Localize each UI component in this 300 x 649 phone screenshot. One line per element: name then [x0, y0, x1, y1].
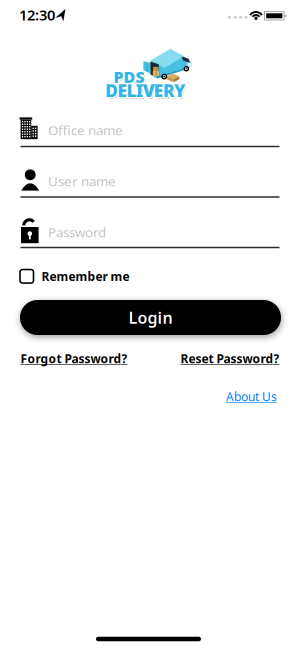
staticText: PDS: [113, 65, 144, 86]
button[interactable]: About Us: [226, 388, 277, 404]
staticText: About Us: [226, 388, 277, 404]
staticText: DELIVERY: [106, 80, 187, 103]
staticText: Forgot Password?: [20, 350, 127, 366]
staticText: PDS: [113, 67, 144, 88]
staticText: PDS: [114, 65, 145, 86]
button[interactable]: Forgot Password?: [20, 350, 127, 366]
staticText: DELIVERY: [107, 79, 187, 102]
staticText: DELIVERY: [106, 78, 187, 101]
staticText: Office name: [48, 121, 123, 139]
staticText: PDS: [114, 67, 145, 88]
button[interactable]: Remember me: [20, 268, 129, 284]
staticText: Password: [48, 223, 106, 241]
staticText: PDS: [113, 66, 144, 87]
staticText: PDS: [115, 68, 146, 89]
staticText: 12:30: [19, 5, 55, 25]
staticText: PDS: [113, 67, 144, 89]
staticText: Reset Password?: [180, 350, 279, 366]
button[interactable]: Reset Password?: [180, 350, 279, 366]
button[interactable]: Login: [20, 300, 281, 335]
staticText: DELIVERY: [107, 81, 187, 104]
staticText: PDS: [112, 66, 143, 87]
staticText: DELIVERY: [105, 78, 186, 101]
staticText: Login: [128, 307, 172, 328]
staticText: DELIVERY: [104, 79, 185, 102]
staticText: DELIVERY: [105, 80, 186, 103]
staticText: DELIVERY: [104, 78, 185, 101]
staticText: DELIVERY: [105, 79, 186, 102]
staticText: PDS: [115, 66, 146, 87]
staticText: User name: [48, 172, 116, 190]
staticText: PDS: [113, 65, 144, 86]
staticText: DELIVERY: [104, 80, 185, 103]
staticText: Remember me: [41, 268, 129, 284]
